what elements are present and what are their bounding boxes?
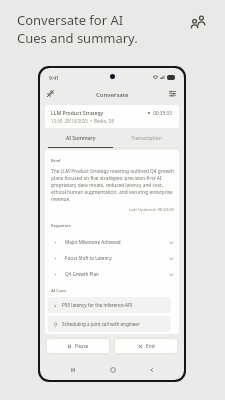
button[interactable]: Major Milestone Achieved	[51, 234, 174, 250]
staticText: Last Updated: 00:34:00	[51, 207, 174, 213]
staticText: P95 latency for the inference API	[62, 302, 133, 308]
staticText: Brief	[51, 158, 61, 164]
staticText: Transcription	[131, 135, 162, 142]
staticText: Conversate	[96, 91, 129, 99]
staticText: Q4 Growth Plan	[65, 271, 169, 277]
button[interactable]: ?	[48, 297, 171, 313]
button[interactable]: LLM Product Strategy	[45, 105, 179, 128]
button[interactable]: Scheduling a joint call with engineer	[48, 316, 171, 332]
button[interactable]: Participants	[186, 10, 210, 34]
button[interactable]: Transcription	[113, 132, 179, 148]
staticText: ?	[54, 303, 57, 308]
button[interactable]: Focus Shift to Latency	[51, 250, 174, 266]
staticText: 9:41	[49, 75, 59, 82]
staticText: 00:35:03	[153, 110, 173, 117]
staticText: Keypoints	[51, 223, 71, 229]
staticText: End	[146, 343, 155, 350]
staticText: Focus Shift to Latency	[65, 255, 169, 261]
button[interactable]: Back	[145, 363, 158, 376]
staticText: Cues and summary.	[17, 29, 138, 47]
button[interactable]: Home	[106, 363, 119, 376]
staticText: Conversate for AI	[17, 11, 124, 29]
staticText: LLM Product Strategy	[51, 110, 104, 117]
button[interactable]: Recents	[66, 363, 79, 376]
button[interactable]: AI Summary	[48, 132, 113, 148]
staticText: 12:30 20/10/2025 • Berlin, DE	[51, 118, 115, 124]
staticText: Major Milestone Achieved	[65, 239, 169, 245]
button[interactable]: End	[114, 338, 178, 354]
staticText: Scheduling a joint call with engineer	[62, 321, 140, 327]
staticText: Pause	[75, 343, 89, 350]
button[interactable]: Q4 Growth Plan	[51, 266, 174, 282]
button[interactable]: Pause	[46, 338, 110, 354]
staticText: The LLM Product Strategy meeting outline…	[51, 168, 174, 203]
button[interactable]: Settings	[166, 87, 179, 100]
staticText: AI Cues	[51, 288, 67, 294]
staticText: AI Summary	[66, 135, 96, 142]
button[interactable]: Collapse	[44, 87, 57, 100]
